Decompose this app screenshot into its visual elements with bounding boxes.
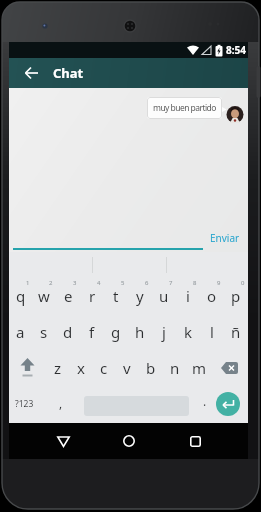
button[interactable]: Enviar xyxy=(210,231,240,245)
button[interactable] xyxy=(9,350,46,386)
staticText: 2 xyxy=(49,279,53,287)
staticText: z xyxy=(54,358,62,378)
button[interactable]: ?123 xyxy=(9,386,40,422)
button[interactable]: p xyxy=(224,278,248,314)
button[interactable]: l xyxy=(200,314,224,350)
button[interactable]: j xyxy=(152,314,176,350)
staticText: ñ xyxy=(231,322,241,342)
staticText: p xyxy=(231,286,241,306)
button[interactable]: i xyxy=(176,278,200,314)
staticText: e xyxy=(64,286,73,306)
button[interactable]: x xyxy=(69,350,92,386)
staticText: ?123 xyxy=(15,398,34,410)
staticText: s xyxy=(40,322,48,342)
button[interactable] xyxy=(101,423,157,459)
button[interactable]: ñ xyxy=(224,314,248,350)
button[interactable]: t xyxy=(104,278,128,314)
staticText: h xyxy=(135,322,145,342)
staticText: 7 xyxy=(169,279,173,287)
button[interactable]: z xyxy=(46,350,69,386)
staticText: 6 xyxy=(145,279,149,287)
staticText: Chat xyxy=(53,64,84,82)
button[interactable] xyxy=(9,58,53,88)
button[interactable]: m xyxy=(187,350,211,386)
button[interactable]: q xyxy=(9,278,32,314)
staticText: j xyxy=(162,322,166,342)
button[interactable]: c xyxy=(92,350,115,386)
button[interactable]: n xyxy=(163,350,187,386)
button[interactable]: , xyxy=(49,386,75,422)
staticText: a xyxy=(16,322,25,342)
button[interactable]: d xyxy=(56,314,80,350)
staticText: g xyxy=(111,322,121,342)
button[interactable]: a xyxy=(9,314,32,350)
button[interactable]: muy buen partido xyxy=(147,97,222,119)
staticText: w xyxy=(38,286,50,306)
button[interactable] xyxy=(216,392,240,416)
button[interactable]: w xyxy=(32,278,56,314)
button[interactable] xyxy=(35,423,91,459)
staticText: t xyxy=(113,286,119,306)
staticText: 8:54 xyxy=(226,43,246,57)
button[interactable]: g xyxy=(104,314,128,350)
staticText: y xyxy=(136,286,144,306)
button[interactable]: k xyxy=(176,314,200,350)
staticText: 0 xyxy=(241,279,245,287)
staticText: 1 xyxy=(26,279,30,287)
staticText: b xyxy=(146,358,156,378)
button[interactable]: o xyxy=(200,278,224,314)
button[interactable]: u xyxy=(152,278,176,314)
button[interactable]: e xyxy=(56,278,80,314)
staticText: k xyxy=(184,322,193,342)
button[interactable] xyxy=(167,423,223,459)
button[interactable] xyxy=(211,350,248,386)
staticText: r xyxy=(89,286,96,306)
button[interactable]: h xyxy=(128,314,152,350)
button[interactable]: s xyxy=(32,314,56,350)
staticText: q xyxy=(16,286,26,306)
staticText: 9 xyxy=(217,279,221,287)
staticText: m xyxy=(192,358,207,378)
staticText: o xyxy=(207,286,217,306)
staticText: 5 xyxy=(121,279,125,287)
staticText: muy buen partido xyxy=(153,102,216,114)
staticText: 3 xyxy=(73,279,77,287)
staticText: x xyxy=(77,358,85,378)
staticText: u xyxy=(159,286,169,306)
staticText: n xyxy=(170,358,180,378)
button[interactable]: r xyxy=(80,278,104,314)
button[interactable]: . xyxy=(193,386,219,422)
staticText: c xyxy=(100,358,108,378)
staticText: . xyxy=(203,393,207,409)
staticText: l xyxy=(210,322,214,342)
staticText: d xyxy=(63,322,73,342)
staticText: 8 xyxy=(193,279,197,287)
staticText: 4 xyxy=(97,279,101,287)
button[interactable]: b xyxy=(139,350,163,386)
button[interactable]: v xyxy=(115,350,139,386)
staticText: v xyxy=(123,358,131,378)
staticText: f xyxy=(89,322,95,342)
button[interactable]: f xyxy=(80,314,104,350)
staticText: , xyxy=(59,395,63,411)
staticText: i xyxy=(186,286,190,306)
button[interactable]: y xyxy=(128,278,152,314)
